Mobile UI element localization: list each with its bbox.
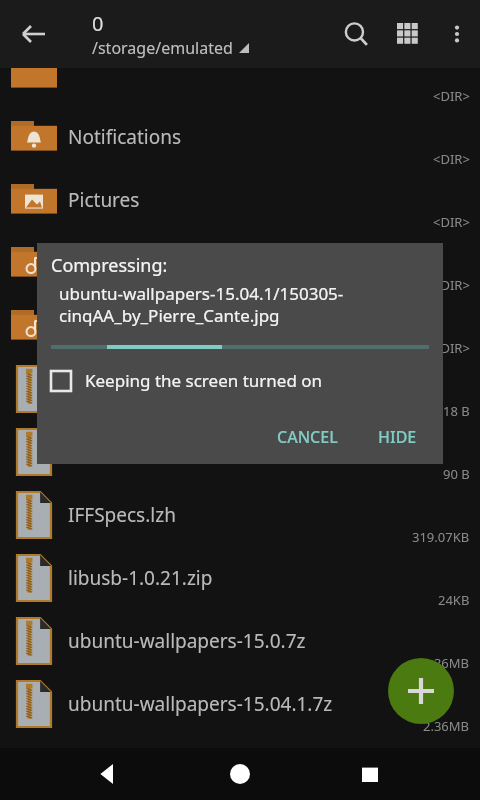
button[interactable]: Keeping the screen turned on: [51, 369, 429, 392]
staticText: alarm.7z: [68, 376, 384, 402]
button[interactable]: More options: [434, 11, 480, 57]
staticText: Keeping the screen turned on: [85, 369, 323, 392]
button[interactable]: Pictures: [0, 168, 480, 231]
staticText: <DIR>: [433, 87, 470, 105]
staticText: Pictures: [68, 187, 384, 213]
button[interactable]: Grid view: [382, 8, 434, 60]
staticText: <DIR>: [433, 339, 470, 357]
staticText: CANCEL: [277, 426, 338, 448]
staticText: 2.36MB: [423, 654, 470, 672]
staticText: Ringtones: [68, 313, 384, 339]
button[interactable]: CANCEL: [265, 418, 350, 456]
button[interactable]: Recent apps: [348, 750, 396, 798]
staticText: ubuntu-wallpapers-15.0.7z: [68, 628, 384, 654]
button[interactable]: Podcasts: [0, 231, 480, 294]
staticText: <DIR>: [433, 213, 470, 231]
staticText: Download.7z: [68, 439, 384, 465]
button[interactable]: libusb-1.0.21.zip: [0, 546, 480, 609]
button[interactable]: IFFSpecs.lzh: [0, 483, 480, 546]
staticText: libusb-1.0.21.zip: [68, 565, 384, 591]
button[interactable]: Search: [330, 8, 382, 60]
staticText: 90 B: [443, 465, 470, 483]
button[interactable]: Add: [388, 658, 454, 724]
staticText: ubuntu-wallpapers-15.04.1.7z: [68, 691, 384, 717]
button[interactable]: Download.7z: [0, 420, 480, 483]
button[interactable]: HIDE: [366, 418, 429, 456]
staticText: Notifications: [68, 124, 384, 150]
button[interactable]: Back: [8, 8, 60, 60]
staticText: /storage/emulated: [92, 37, 233, 59]
staticText: IFFSpecs.lzh: [68, 502, 384, 528]
staticText: 319.07KB: [412, 528, 470, 546]
button[interactable]: ubuntu-wallpapers-15.04.1.7z: [0, 672, 480, 735]
staticText: [68, 61, 384, 87]
button[interactable]: alarm.7z: [0, 357, 480, 420]
staticText: ubuntu-wallpapers-15.04.1/150305-cinqAA_…: [59, 282, 429, 327]
button[interactable]: <DIR>: [0, 42, 480, 105]
staticText: <DIR>: [433, 150, 470, 168]
staticText: Podcasts: [68, 250, 384, 276]
button[interactable]: ubuntu-wallpapers-15.0.7z: [0, 609, 480, 672]
staticText: 2.36MB: [423, 717, 470, 735]
staticText: 24KB: [438, 591, 470, 609]
staticText: Compressing:: [51, 253, 168, 278]
staticText: 18 B: [443, 402, 470, 420]
button[interactable]: Home: [216, 750, 264, 798]
staticText: 0: [92, 10, 104, 37]
staticText: HIDE: [378, 426, 417, 448]
button[interactable]: Ringtones: [0, 294, 480, 357]
button[interactable]: Notifications: [0, 105, 480, 168]
button[interactable]: Back: [84, 750, 132, 798]
staticText: <DIR>: [433, 276, 470, 294]
